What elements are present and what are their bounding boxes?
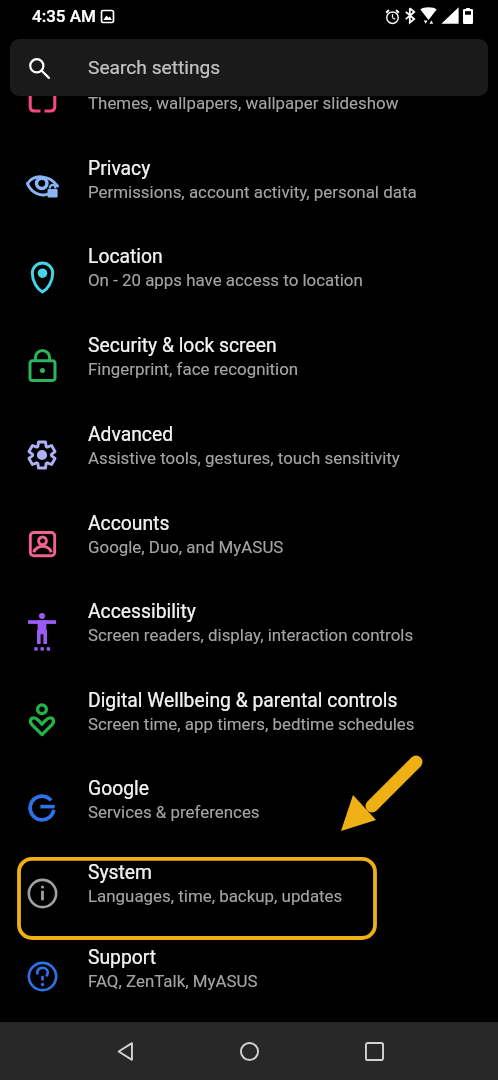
staticText: Security & lock screen	[88, 334, 277, 357]
button[interactable]: Display	[0, 96, 498, 155]
button[interactable]: Back	[96, 1022, 154, 1080]
staticText: FAQ, ZenTalk, MyASUS	[88, 971, 258, 991]
button[interactable]: System	[0, 859, 498, 948]
staticText: Accounts	[88, 512, 170, 535]
staticText: Screen readers, display, interaction con…	[88, 625, 414, 645]
staticText: Screen time, app timers, bedtime schedul…	[88, 714, 415, 734]
staticText: Advanced	[88, 423, 174, 446]
button[interactable]: Search settings	[10, 39, 488, 96]
button[interactable]: Digital Wellbeing & parental controls	[0, 687, 498, 776]
staticText: Assistive tools, gestures, touch sensiti…	[88, 448, 400, 468]
staticText: Themes, wallpapers, wallpaper slideshow	[88, 96, 399, 113]
button[interactable]: Support	[0, 944, 498, 1022]
button[interactable]: Recent apps	[345, 1022, 403, 1080]
button[interactable]: Home	[220, 1022, 278, 1080]
button[interactable]: Security & lock screen	[0, 332, 498, 421]
button[interactable]: Google	[0, 775, 498, 864]
staticText: Google, Duo, and MyASUS	[88, 537, 284, 557]
button[interactable]: Advanced	[0, 421, 498, 510]
staticText: Accessibility	[88, 600, 196, 623]
staticText: Search settings	[88, 56, 221, 79]
staticText: Permissions, account activity, personal …	[88, 182, 417, 202]
staticText: Fingerprint, face recognition	[88, 359, 299, 379]
button[interactable]: Location	[0, 243, 498, 332]
button[interactable]: Accessibility	[0, 598, 498, 687]
staticText: Digital Wellbeing & parental controls	[88, 689, 398, 712]
staticText: 4:35 AM	[32, 6, 96, 26]
staticText: Privacy	[88, 157, 151, 180]
staticText: Services & preferences	[88, 802, 260, 822]
staticText: System	[88, 861, 153, 884]
staticText: Support	[88, 946, 157, 969]
staticText: Location	[88, 245, 163, 268]
button[interactable]: Accounts	[0, 510, 498, 599]
staticText: On - 20 apps have access to location	[88, 270, 363, 290]
button[interactable]: Privacy	[0, 155, 498, 244]
staticText: Google	[88, 777, 149, 800]
staticText: Languages, time, backup, updates	[88, 886, 343, 906]
